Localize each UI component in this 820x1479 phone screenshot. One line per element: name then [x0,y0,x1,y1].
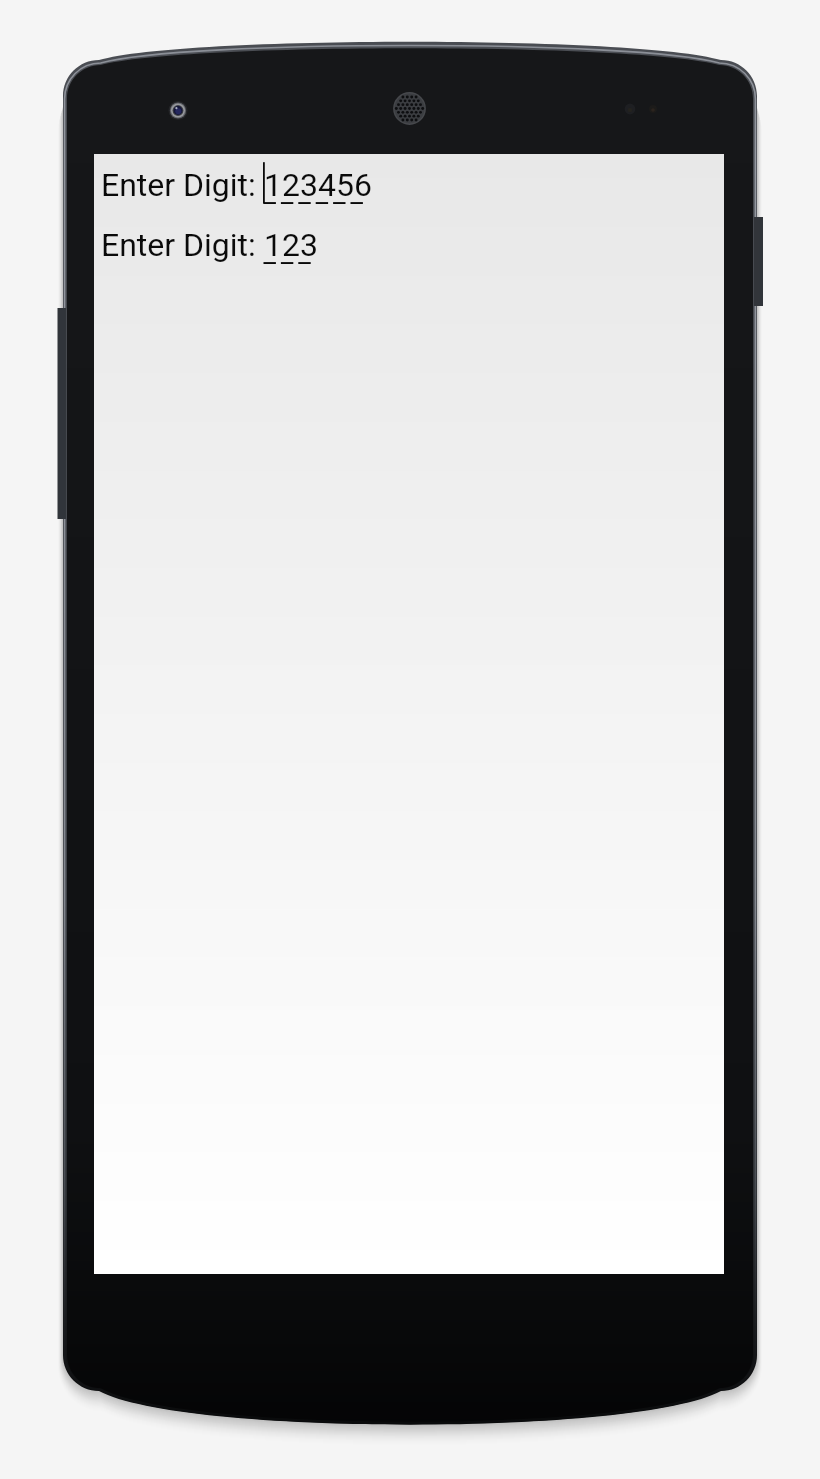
button[interactable]: Volume [58,308,67,519]
staticText: 123456 [264,166,372,204]
button[interactable]: Power [754,217,764,306]
staticText: Enter Digit: [101,226,256,264]
staticText: Enter Digit: [101,166,256,204]
button[interactable]: Enter Digit: [94,229,724,285]
button[interactable]: Enter Digit: [94,169,724,225]
staticText: 123 [264,226,318,264]
